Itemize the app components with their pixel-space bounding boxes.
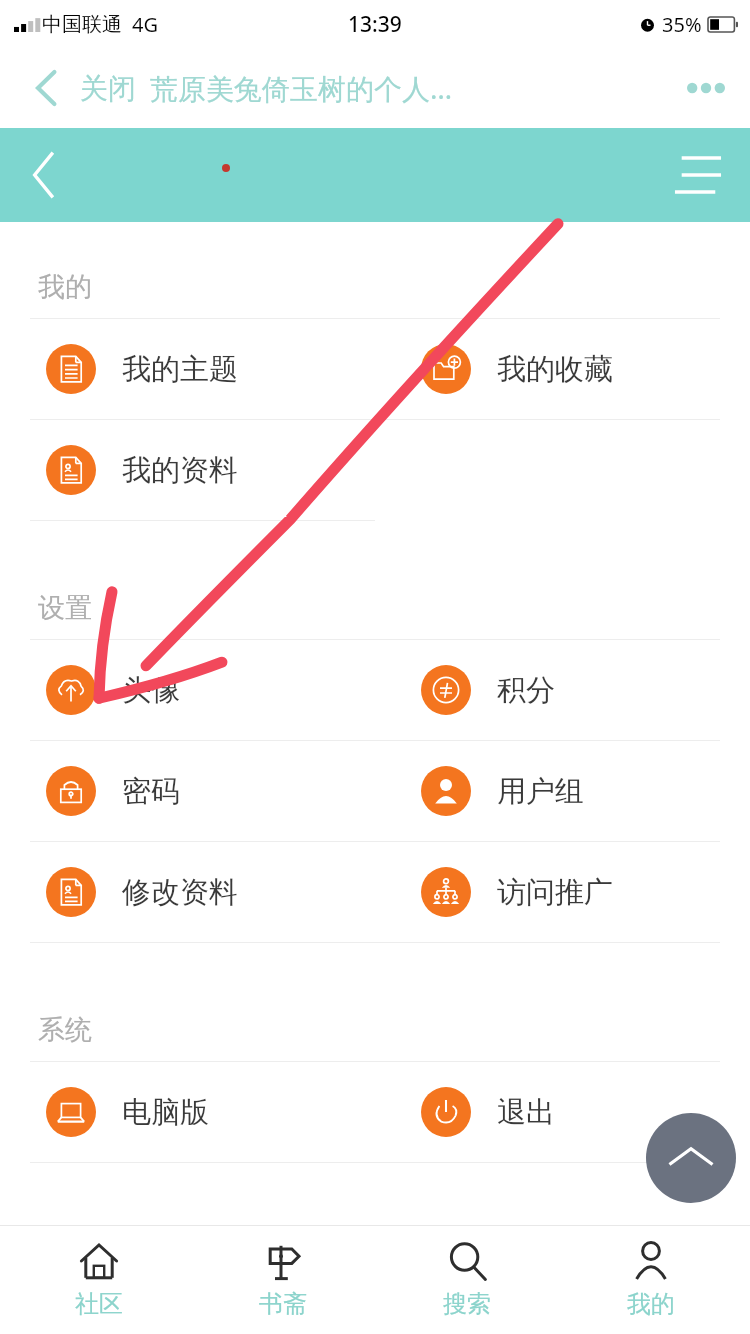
button[interactable]: 搜索	[382, 1226, 552, 1334]
staticText: 密码	[122, 773, 180, 810]
button[interactable]: 用户组	[375, 741, 750, 841]
staticText: 搜索	[443, 1289, 491, 1319]
button[interactable]: 我的收藏	[375, 319, 750, 419]
staticText: 我的收藏	[497, 351, 613, 388]
staticText: 我的	[38, 270, 92, 304]
button[interactable]: 书斋	[198, 1226, 368, 1334]
button[interactable]: Back	[16, 148, 70, 202]
button[interactable]: Back	[24, 66, 68, 110]
staticText: 关闭	[80, 71, 136, 106]
staticText: 系统	[38, 1013, 92, 1047]
staticText: 用户组	[497, 773, 584, 810]
staticText: 我的	[627, 1289, 675, 1319]
button[interactable]: 退出	[375, 1062, 750, 1162]
staticText: 荒原美兔倚玉树的个人…	[150, 69, 453, 107]
staticText: 访问推广	[497, 874, 613, 911]
staticText: 设置	[38, 591, 92, 625]
button[interactable]: 我的主题	[0, 319, 375, 419]
staticText: 4G	[132, 11, 158, 38]
staticText: 退出	[497, 1094, 555, 1131]
button[interactable]: 社区	[14, 1226, 184, 1334]
staticText: 中国联通	[42, 12, 122, 37]
button[interactable]: 密码	[0, 741, 375, 841]
button[interactable]: 电脑版	[0, 1062, 375, 1162]
staticText: 我的资料	[122, 452, 238, 489]
button[interactable]: 我的	[566, 1226, 736, 1334]
staticText: 头像	[122, 672, 180, 709]
button[interactable]: 头像	[0, 640, 375, 740]
button[interactable]: 访问推广	[375, 842, 750, 942]
staticText: 书斋	[259, 1289, 307, 1319]
staticText: 社区	[75, 1289, 123, 1319]
staticText: 13:39	[348, 10, 402, 39]
button[interactable]: Menu	[668, 145, 728, 205]
button[interactable]: 关闭	[80, 71, 136, 106]
button[interactable]: 我的资料	[0, 420, 375, 520]
staticText: 35%	[662, 11, 702, 38]
staticText: 我的主题	[122, 351, 238, 388]
staticText: 修改资料	[122, 874, 238, 911]
button[interactable]: Scroll to top	[646, 1113, 736, 1203]
button[interactable]: 积分	[375, 640, 750, 740]
button[interactable]: 修改资料	[0, 842, 375, 942]
button[interactable]: More options	[684, 66, 728, 110]
staticText: 积分	[497, 672, 555, 709]
staticText: 电脑版	[122, 1094, 209, 1131]
